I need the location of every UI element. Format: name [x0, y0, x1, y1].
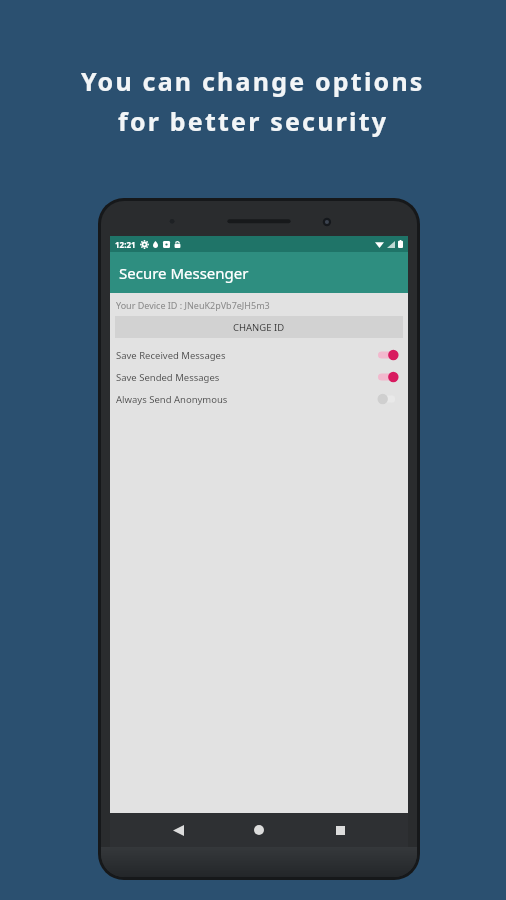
staticText: Secure Messenger — [119, 263, 249, 283]
button[interactable]: Back — [165, 817, 191, 843]
staticText: 12:21 — [115, 239, 136, 250]
staticText: You can change options — [81, 64, 425, 98]
other: Save Sended Messages — [378, 371, 400, 383]
staticText: for better security — [118, 104, 389, 138]
button[interactable]: Home — [246, 817, 272, 843]
button[interactable]: Save Received Messages — [110, 344, 408, 366]
staticText: Save Received Messages — [116, 349, 226, 362]
staticText: Always Send Anonymous — [116, 393, 228, 406]
button[interactable]: CHANGE ID — [115, 316, 403, 338]
staticText: Save Sended Messages — [116, 371, 220, 384]
other: Always Send Anonymous — [378, 393, 400, 405]
staticText: CHANGE ID — [233, 321, 285, 334]
staticText: Your Device ID : JNeuK2pVb7eJH5m3 — [116, 299, 270, 311]
other: Save Received Messages — [378, 349, 400, 361]
button[interactable]: Save Sended Messages — [110, 366, 408, 388]
button[interactable]: Always Send Anonymous — [110, 388, 408, 410]
button[interactable]: Recents — [327, 817, 353, 843]
